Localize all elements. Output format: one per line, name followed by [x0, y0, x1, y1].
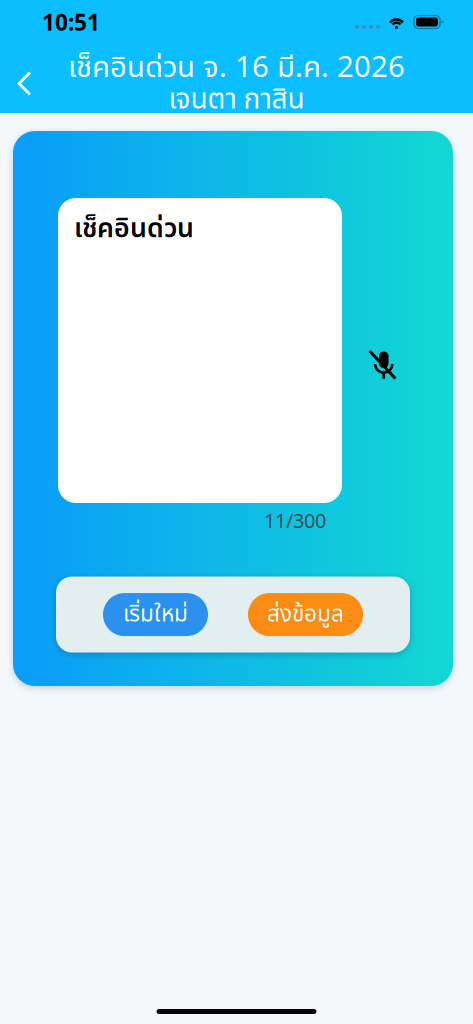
button[interactable]: Microphone off	[369, 198, 396, 380]
button[interactable]: Back	[0, 50, 48, 106]
staticText: ส่งข้อมูล	[267, 597, 344, 632]
staticText: 11/300	[264, 507, 326, 534]
button[interactable]: ส่งข้อมูล	[248, 593, 363, 636]
staticText: เช็คอินด่วน จ. 16 มี.ค. 2026	[68, 46, 405, 90]
staticText: เช็คอินด่วน	[74, 209, 194, 249]
button[interactable]: เริ่มใหม่	[103, 593, 208, 636]
staticText: 10:51	[42, 7, 100, 37]
staticText: เริ่มใหม่	[123, 597, 188, 632]
staticText: เจนตา กาสิน	[168, 79, 304, 121]
